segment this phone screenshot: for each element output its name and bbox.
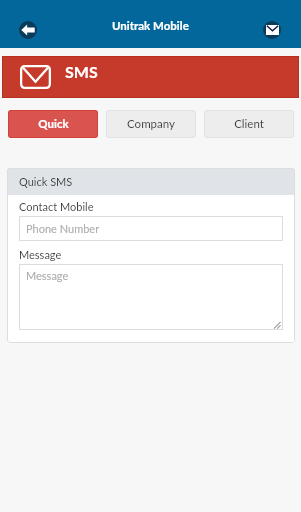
staticText: Company (127, 117, 175, 131)
staticText: Phone Number (26, 222, 100, 235)
button[interactable]: Messages (263, 21, 281, 39)
staticText: Message (19, 248, 62, 261)
button[interactable]: Phone Number (19, 216, 283, 241)
button[interactable]: Back (19, 21, 37, 39)
staticText: Quick (38, 117, 69, 131)
staticText: Quick SMS (19, 175, 73, 188)
staticText: Client (234, 117, 264, 131)
staticText: Message (26, 269, 69, 282)
staticText: Contact Mobile (19, 200, 94, 213)
staticText: Unitrak Mobile (112, 19, 189, 33)
button[interactable]: SMS (2, 56, 299, 98)
button[interactable]: Message (19, 264, 283, 330)
staticText: SMS (65, 62, 98, 81)
button[interactable]: Client (204, 110, 294, 138)
button[interactable]: Company (106, 110, 196, 138)
button[interactable]: Quick (8, 110, 98, 138)
